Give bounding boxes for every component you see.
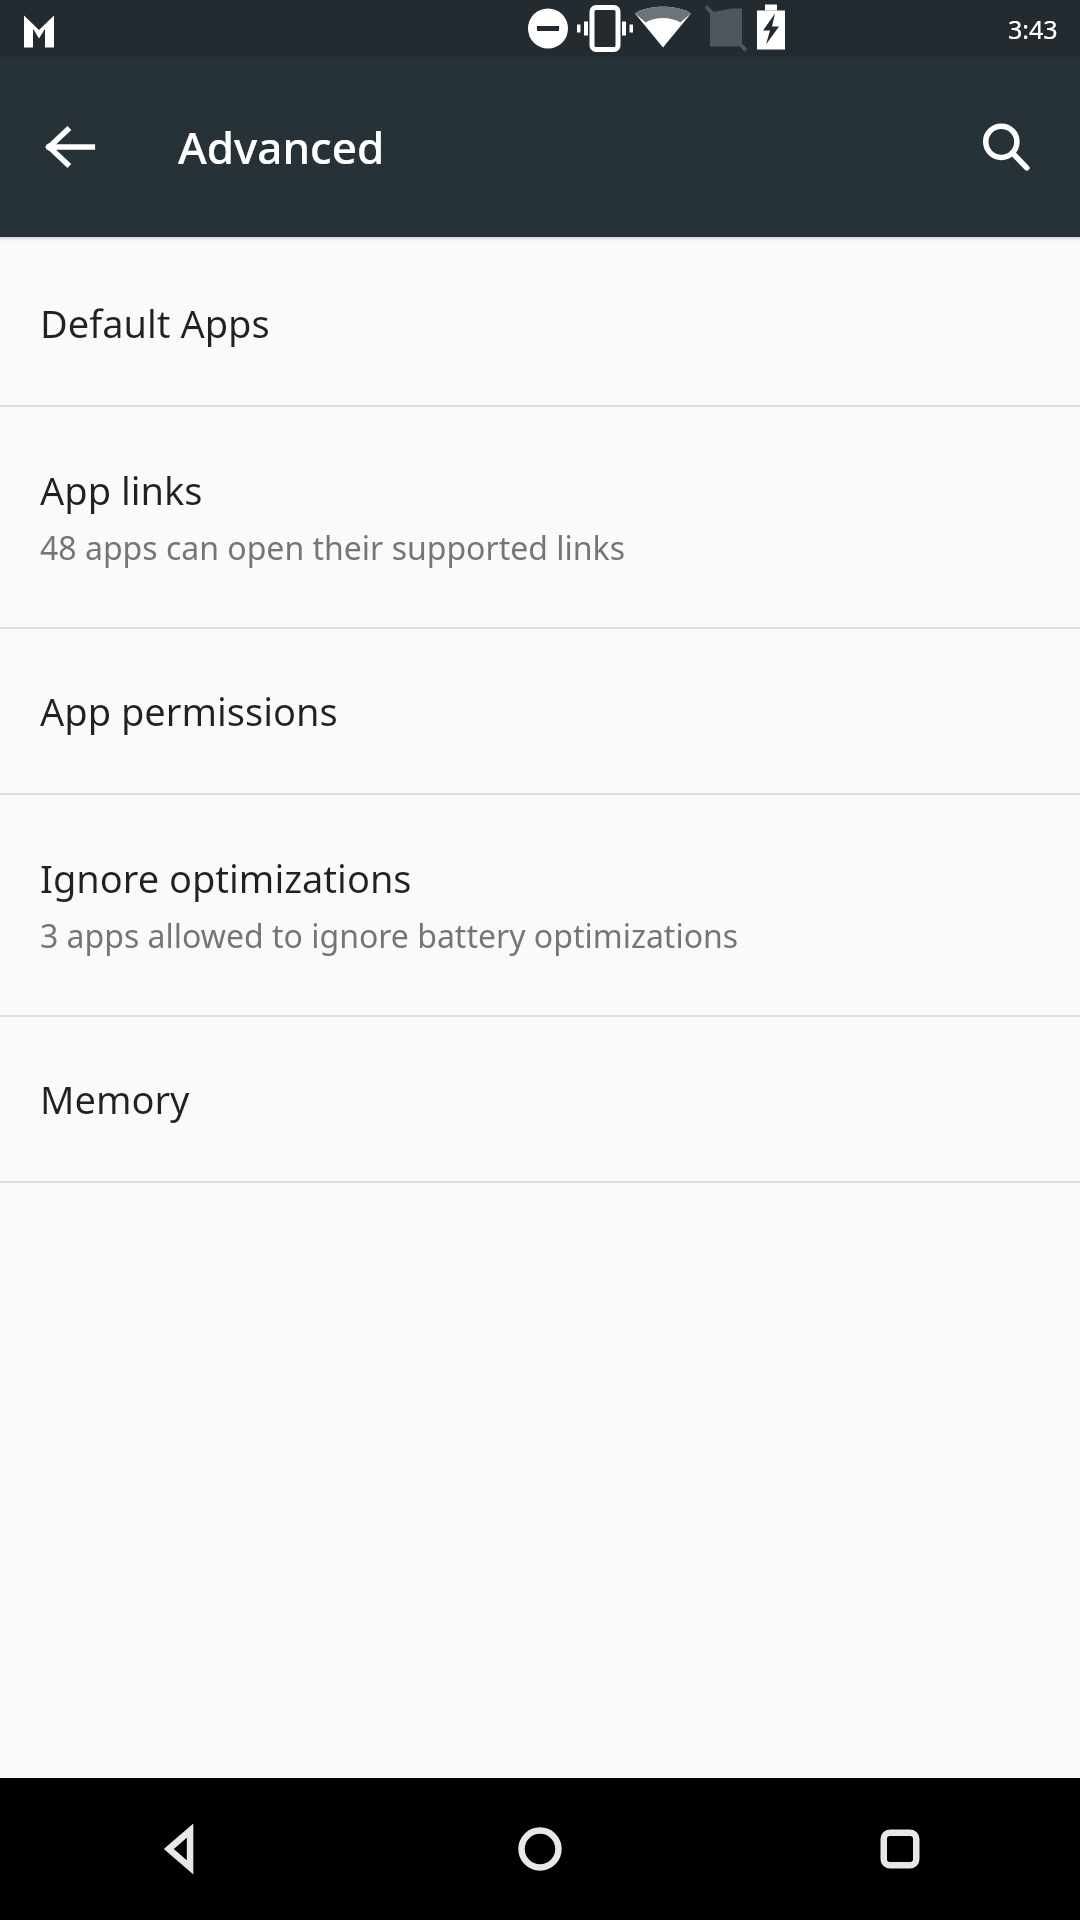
button[interactable]: Home — [360, 1778, 720, 1920]
staticText: 3 apps allowed to ignore battery optimiz… — [40, 914, 739, 958]
button[interactable]: Ignore optimizations — [0, 795, 1080, 1015]
button[interactable]: Search — [954, 95, 1058, 199]
staticText: 3:43 — [1008, 12, 1058, 46]
staticText: Ignore optimizations — [40, 852, 412, 904]
button[interactable]: Back — [0, 1778, 360, 1920]
staticText: App links — [40, 464, 203, 516]
staticText: Memory — [40, 1073, 190, 1125]
button[interactable]: Navigate up — [18, 95, 122, 199]
staticText: Default Apps — [40, 297, 270, 349]
button[interactable]: App links — [0, 407, 1080, 627]
button[interactable]: Memory — [0, 1017, 1080, 1181]
staticText: 48 apps can open their supported links — [40, 526, 625, 570]
staticText: Advanced — [178, 117, 385, 177]
button[interactable]: Default Apps — [0, 241, 1080, 405]
staticText: App permissions — [40, 685, 338, 737]
button[interactable]: App permissions — [0, 629, 1080, 793]
button[interactable]: Recent apps — [720, 1778, 1080, 1920]
